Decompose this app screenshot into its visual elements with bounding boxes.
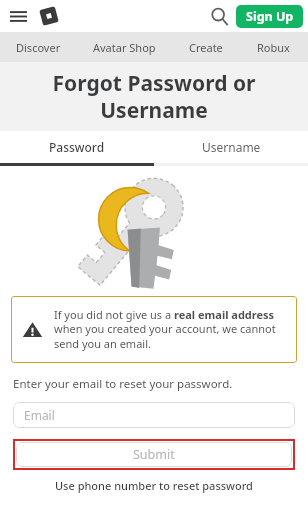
staticText: Discover (16, 40, 61, 55)
staticText: Avatar Shop (93, 40, 156, 55)
button[interactable]: Use phone number to reset password (13, 478, 295, 493)
staticText: If you did not give us a real email addr… (54, 307, 286, 352)
staticText: Username (202, 139, 261, 155)
staticText: Use phone number to reset password (55, 478, 253, 493)
staticText: Create (189, 40, 223, 55)
button[interactable]: Username (154, 131, 308, 163)
staticText: Email (24, 407, 55, 423)
staticText: Enter your email to reset your password. (13, 376, 233, 392)
staticText: Password (49, 139, 105, 155)
button[interactable]: Roblox home (36, 3, 62, 29)
button[interactable]: Submit (16, 442, 292, 467)
staticText: Submit (133, 446, 175, 463)
button[interactable]: Discover (0, 32, 77, 62)
button[interactable]: Avatar Shop (77, 32, 172, 62)
button[interactable]: Robux (239, 32, 308, 62)
button[interactable]: Create (172, 32, 239, 62)
staticText: Robux (257, 40, 290, 55)
button[interactable]: Password (0, 131, 154, 163)
button[interactable]: Email (13, 402, 295, 428)
staticText: Forgot Password or Username (26, 69, 282, 124)
staticText: Sign Up (246, 8, 294, 25)
button[interactable]: Sign Up (236, 5, 303, 28)
button[interactable]: Menu (5, 3, 31, 29)
button[interactable]: Search (206, 3, 232, 29)
